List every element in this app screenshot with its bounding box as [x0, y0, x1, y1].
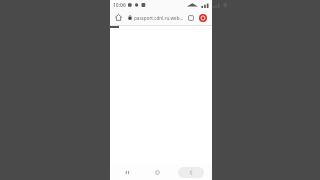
staticText: passport.cdnl.ru.website.tr: [134, 15, 184, 21]
button[interactable]: passport.cdnl.ru.website.tr: [126, 11, 184, 24]
button[interactable]: Back: [178, 167, 204, 178]
button[interactable]: Home: [113, 12, 124, 23]
button[interactable]: Switch tabs: [185, 12, 196, 23]
staticText: 10:06: [113, 2, 126, 9]
button[interactable]: Recent apps: [118, 165, 136, 179]
button[interactable]: Account: [197, 12, 208, 23]
button[interactable]: Home: [148, 165, 166, 179]
